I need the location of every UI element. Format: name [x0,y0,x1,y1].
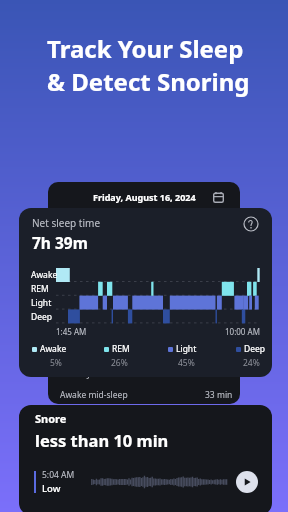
staticText: Friday, August 16, 2024 [93,191,196,203]
staticText: REM [112,343,130,355]
button[interactable]: Help [243,216,259,232]
staticText: 7h 39m [32,232,88,253]
staticText: 5:04 AM [42,469,75,481]
staticText: Awake [40,343,67,355]
button[interactable]: Pick date [213,192,224,203]
staticText: 45% [178,357,195,369]
staticText: Awake [31,269,58,281]
staticText: 10:00 AM [225,326,260,337]
staticText: 33 min [205,389,233,401]
staticText: 50 min [205,368,233,380]
staticText: 5% [50,357,62,369]
staticText: 24% [243,357,260,369]
staticText: Deep [244,343,266,355]
staticText: Track Your Sleep [47,32,244,65]
staticText: Light [31,297,52,309]
staticText: Awake mid-sleep [60,389,128,401]
staticText: Low [42,482,61,495]
staticText: REM [31,283,49,295]
staticText: 1:45 AM [56,326,87,337]
staticText: Deep [31,311,53,323]
staticText: & Detect Snoring [47,65,250,98]
staticText: Net sleep time [32,216,101,230]
button[interactable]: Play [236,471,258,493]
staticText: Latency [60,368,91,380]
staticText: 26% [111,357,128,369]
staticText: Snore [35,411,67,426]
staticText: Light [176,343,197,355]
staticText: less than 10 min [35,429,169,451]
